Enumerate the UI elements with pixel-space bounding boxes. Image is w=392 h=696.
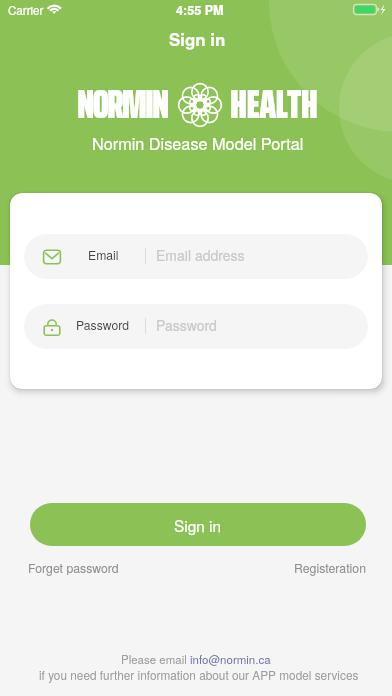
other: Email (43, 248, 61, 266)
staticText: Password (76, 316, 130, 333)
button[interactable]: Email (24, 234, 368, 279)
staticText: Please email info@normin.ca (121, 651, 271, 667)
staticText: Email (88, 246, 119, 263)
staticText: NORMIN (77, 73, 168, 135)
staticText: 4:55 PM (176, 1, 224, 19)
other: Wi-Fi (46, 3, 63, 16)
other: Password (43, 318, 61, 336)
staticText: Carrier (8, 2, 44, 19)
staticText: Sign in (169, 27, 226, 51)
other: Battery charging (353, 3, 389, 16)
staticText: Sign in (174, 514, 222, 536)
staticText: Normin Disease Model Portal (92, 131, 304, 154)
staticText: HEALTH (230, 73, 318, 135)
button[interactable]: Sign in (30, 503, 366, 546)
staticText: if you need further information about ou… (39, 666, 359, 683)
button[interactable]: Password (24, 304, 368, 349)
staticText: Password (156, 315, 217, 335)
button[interactable]: Forget password (28, 559, 119, 577)
staticText: Forget password (28, 559, 119, 577)
staticText: Email address (156, 245, 245, 265)
button[interactable]: Registeration (294, 559, 367, 577)
staticText: Registeration (294, 559, 367, 577)
